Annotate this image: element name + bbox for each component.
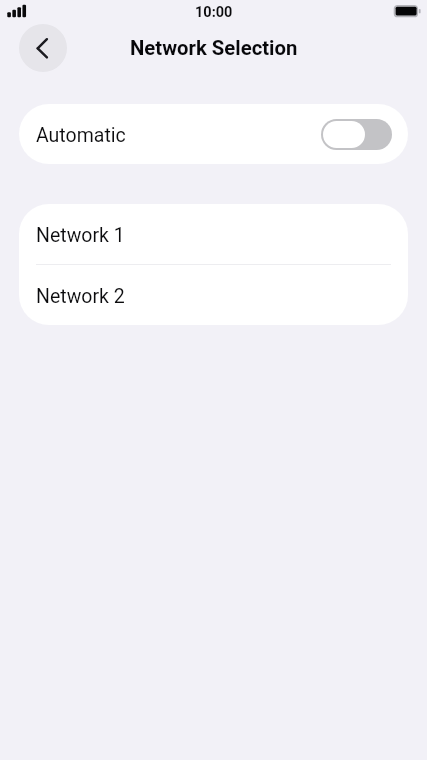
button[interactable]: Network 1: [19, 204, 408, 264]
staticText: Automatic: [36, 124, 126, 147]
staticText: Network 1: [36, 224, 125, 247]
button[interactable]: Network 2: [19, 265, 408, 325]
button[interactable]: Automatic: [19, 104, 408, 164]
button[interactable]: Automatic network selection: [321, 119, 392, 150]
button[interactable]: Back: [19, 24, 67, 72]
staticText: Network 2: [36, 285, 125, 308]
staticText: Network Selection: [130, 36, 298, 60]
staticText: 10:00: [195, 4, 233, 21]
